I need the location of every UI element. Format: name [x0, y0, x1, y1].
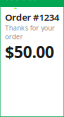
staticText: $50.00	[5, 41, 54, 62]
staticText: Order #1234	[5, 11, 59, 23]
staticText: Thanks for your order	[5, 23, 55, 41]
staticText: Receipt	[5, 0, 40, 19]
